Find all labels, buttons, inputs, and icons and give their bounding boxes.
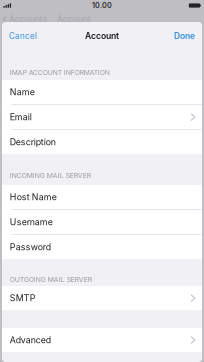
staticText: Username bbox=[10, 217, 53, 227]
button[interactable]: Host Name bbox=[2, 185, 202, 209]
staticText: Host Name bbox=[10, 192, 57, 202]
staticText: Advanced bbox=[10, 335, 51, 345]
button[interactable]: SMTP bbox=[2, 286, 202, 310]
staticText: Account bbox=[85, 31, 119, 41]
button[interactable]: Password bbox=[2, 235, 202, 259]
button[interactable]: Description bbox=[2, 130, 202, 154]
staticText: Name bbox=[10, 87, 35, 97]
button[interactable]: Username bbox=[2, 210, 202, 234]
staticText: Accounts bbox=[9, 14, 48, 24]
button[interactable]: Done bbox=[168, 22, 202, 50]
staticText: Account bbox=[57, 14, 91, 24]
staticText: OUTGOING MAIL SERVER bbox=[10, 275, 92, 284]
staticText: Password bbox=[10, 242, 51, 252]
staticText: Email bbox=[10, 112, 32, 122]
button[interactable]: Cancel bbox=[2, 22, 43, 50]
button[interactable]: Name bbox=[2, 80, 202, 104]
button[interactable]: Email bbox=[2, 105, 202, 129]
staticText: SMTP bbox=[10, 293, 36, 303]
staticText: Description bbox=[10, 137, 56, 147]
staticText: IMAP ACCOUNT INFORMATION bbox=[10, 68, 110, 77]
staticText: INCOMING MAIL SERVER bbox=[10, 171, 91, 180]
staticText: Done bbox=[174, 31, 195, 41]
staticText: Cancel bbox=[9, 31, 37, 41]
button[interactable]: Advanced bbox=[2, 328, 202, 352]
staticText: 10.00 bbox=[92, 1, 112, 10]
